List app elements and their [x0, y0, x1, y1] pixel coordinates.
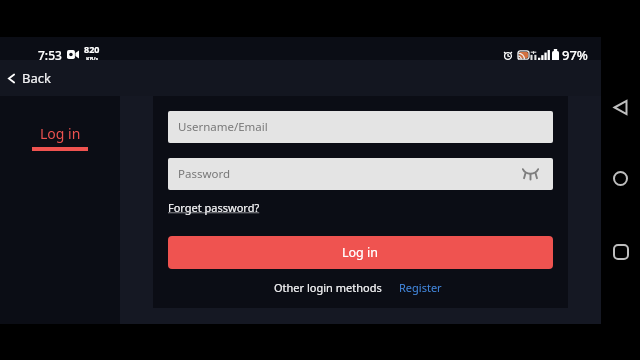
- button[interactable]: Home: [601, 159, 640, 198]
- button[interactable]: Recent apps: [601, 232, 640, 271]
- button[interactable]: Back: [601, 88, 640, 127]
- staticText: 7:53: [38, 47, 62, 63]
- staticText: Username/Email: [178, 119, 268, 135]
- staticText: Back: [22, 69, 51, 87]
- staticText: Password: [178, 166, 231, 182]
- button[interactable]: Log in: [168, 236, 553, 269]
- button[interactable]: Register: [399, 280, 442, 295]
- button[interactable]: Username/Email: [168, 111, 553, 143]
- staticText: Log in: [40, 124, 81, 143]
- staticText: KB/s: [86, 55, 99, 62]
- staticText: 97%: [562, 46, 588, 64]
- button[interactable]: Forget password?: [168, 200, 260, 215]
- button[interactable]: Log in: [22, 118, 98, 157]
- staticText: 820: [84, 43, 100, 55]
- staticText: Log in: [342, 244, 379, 261]
- button[interactable]: Password: [168, 158, 553, 190]
- button[interactable]: Show password: [519, 162, 541, 184]
- button[interactable]: Other login methods: [274, 280, 382, 295]
- button[interactable]: Back: [2, 63, 55, 93]
